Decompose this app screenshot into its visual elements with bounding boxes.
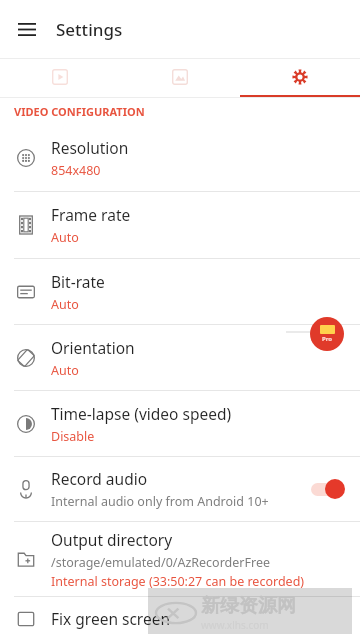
staticText: 854x480 (51, 162, 101, 179)
button[interactable]: Orientation (0, 325, 360, 390)
button[interactable]: Fix green screen (0, 597, 360, 640)
staticText: Auto (51, 296, 79, 313)
button[interactable]: Video tab (0, 59, 120, 95)
staticText: Internal storage (33:50:27 can be record… (51, 573, 305, 590)
staticText: Settings (56, 18, 123, 41)
staticText: Auto (51, 229, 79, 246)
staticText: Fix green screen (51, 608, 171, 629)
staticText: Record audio (51, 468, 148, 489)
staticText: /storage/emulated/0/AzRecorderFree (51, 554, 270, 571)
staticText: Frame rate (51, 204, 131, 225)
button[interactable]: Output directory (0, 522, 360, 596)
staticText: Auto (51, 362, 79, 379)
staticText: Output directory (51, 529, 173, 550)
button[interactable]: Image tab (120, 59, 240, 95)
button[interactable]: Frame rate (0, 192, 360, 258)
button[interactable]: Bit-rate (0, 259, 360, 324)
staticText: Time-lapse (video speed) (51, 403, 232, 424)
staticText: www.xlhs.com (201, 618, 269, 632)
staticText: Resolution (51, 137, 129, 158)
button[interactable]: Open navigation menu (5, 7, 49, 51)
button[interactable]: Settings tab (240, 59, 360, 95)
staticText: Orientation (51, 337, 135, 358)
button[interactable]: Record audio toggle, on (306, 477, 348, 501)
button[interactable]: Record audio (0, 457, 360, 521)
staticText: Bit-rate (51, 271, 105, 292)
staticText: Internal audio only from Android 10+ (51, 493, 269, 510)
staticText: Pro (322, 335, 333, 343)
button[interactable]: Resolution (0, 125, 360, 191)
button[interactable]: Time-lapse (video speed) (0, 391, 360, 456)
staticText: Disable (51, 428, 95, 445)
button[interactable]: Upgrade to Pro (310, 317, 344, 351)
staticText: 新绿资源网 (201, 594, 296, 618)
staticText: VIDEO CONFIGURATION (14, 104, 145, 119)
